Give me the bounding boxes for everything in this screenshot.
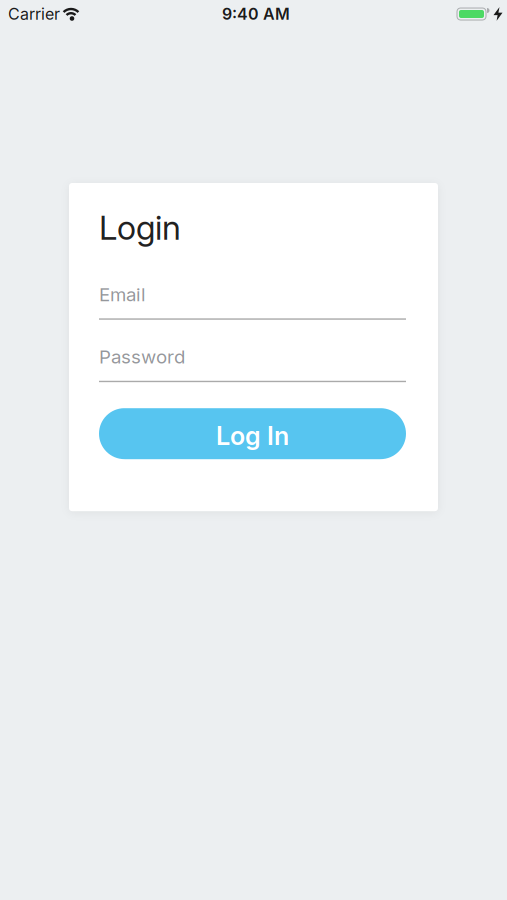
staticText: Carrier	[8, 5, 60, 23]
staticText: Log In	[216, 421, 289, 451]
button[interactable]: Email	[99, 283, 406, 320]
staticText: 9:40 AM	[222, 5, 290, 23]
button[interactable]: Password	[99, 346, 406, 382]
button[interactable]: Log In	[99, 408, 406, 459]
staticText: Password	[99, 346, 185, 368]
staticText: Email	[99, 283, 146, 305]
staticText: Login	[99, 208, 181, 247]
